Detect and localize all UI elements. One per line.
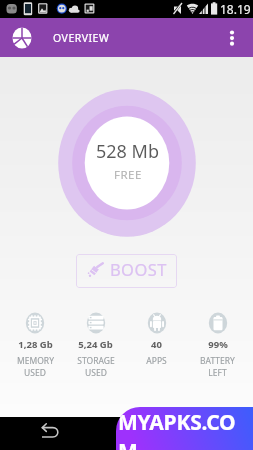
staticText: BATTERY — [200, 355, 235, 367]
staticText: LEFT — [208, 367, 227, 379]
staticText: APPS — [146, 355, 167, 367]
button[interactable]: App logo — [11, 27, 33, 49]
staticText: STORAGE — [77, 355, 115, 367]
staticText: 18.19 — [220, 1, 251, 17]
button[interactable]: 5,24 Gb — [65, 312, 126, 379]
button[interactable]: Back — [36, 421, 70, 447]
staticText: OVERVIEW — [53, 31, 110, 45]
staticText: 5,24 Gb — [78, 338, 113, 351]
button[interactable]: More options — [215, 21, 249, 55]
staticText: 40 — [151, 338, 162, 351]
staticText: MEMORY — [17, 355, 54, 367]
staticText: 1,28 Gb — [18, 338, 53, 351]
button[interactable]: 40 — [126, 312, 187, 367]
button[interactable]: 1,28 Gb — [5, 312, 65, 379]
staticText: MYAPKS.COM — [118, 408, 253, 450]
staticText: USED — [85, 367, 107, 379]
button[interactable]: 99% — [187, 312, 248, 379]
staticText: BOOST — [110, 258, 167, 280]
button[interactable]: BOOST — [76, 254, 177, 288]
staticText: FREE — [114, 167, 142, 183]
staticText: USED — [24, 367, 46, 379]
staticText: 528 Mb — [96, 139, 159, 164]
staticText: 99% — [208, 338, 228, 351]
